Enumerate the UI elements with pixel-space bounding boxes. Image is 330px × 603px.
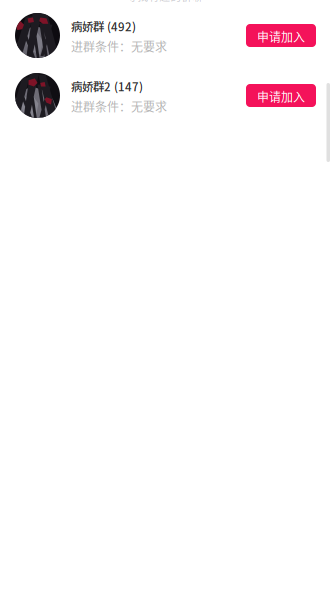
- staticText: 寻找有趣的群聊: [126, 0, 203, 4]
- staticText: 病娇群 (492): [71, 18, 136, 35]
- staticText: 进群条件：无要求: [71, 38, 167, 55]
- button[interactable]: 申请加入: [246, 24, 316, 47]
- button[interactable]: 申请加入: [246, 84, 316, 107]
- staticText: 申请加入: [257, 28, 305, 45]
- staticText: 申请加入: [257, 88, 305, 105]
- staticText: 进群条件：无要求: [71, 98, 167, 115]
- staticText: 病娇群2 (147): [71, 78, 143, 95]
